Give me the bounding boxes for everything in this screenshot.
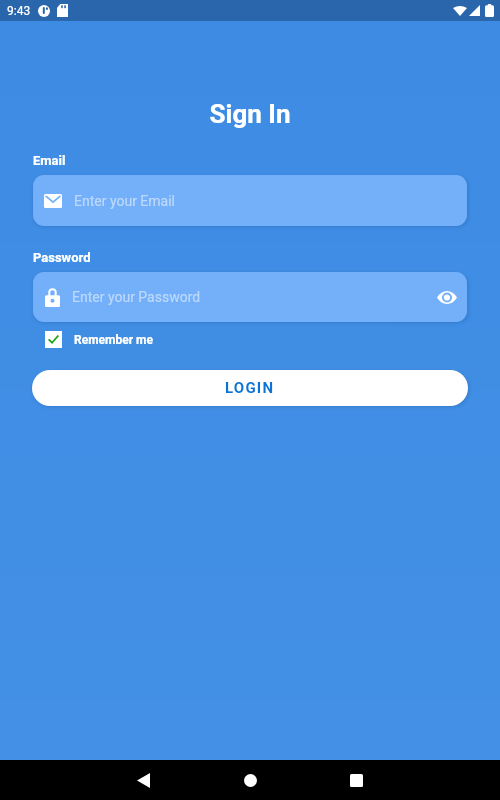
staticText: Sign In — [0, 99, 500, 129]
staticText: Password — [33, 250, 91, 265]
button[interactable]: Remember me — [45, 331, 153, 348]
button[interactable]: Enter your Password — [33, 272, 467, 322]
staticText: LOGIN — [225, 379, 275, 397]
staticText: 9:43 — [7, 4, 31, 18]
staticText: Email — [33, 153, 66, 168]
button[interactable]: Enter your Email — [33, 175, 467, 226]
button[interactable]: Home — [226, 760, 274, 800]
staticText: Enter your Email — [74, 193, 176, 209]
button[interactable]: Back — [119, 760, 167, 800]
button[interactable]: LOGIN — [32, 370, 468, 406]
staticText: Enter your Password — [72, 289, 435, 305]
button[interactable]: Show password — [435, 285, 459, 309]
button[interactable]: Recent apps — [332, 760, 380, 800]
staticText: Remember me — [74, 333, 153, 347]
